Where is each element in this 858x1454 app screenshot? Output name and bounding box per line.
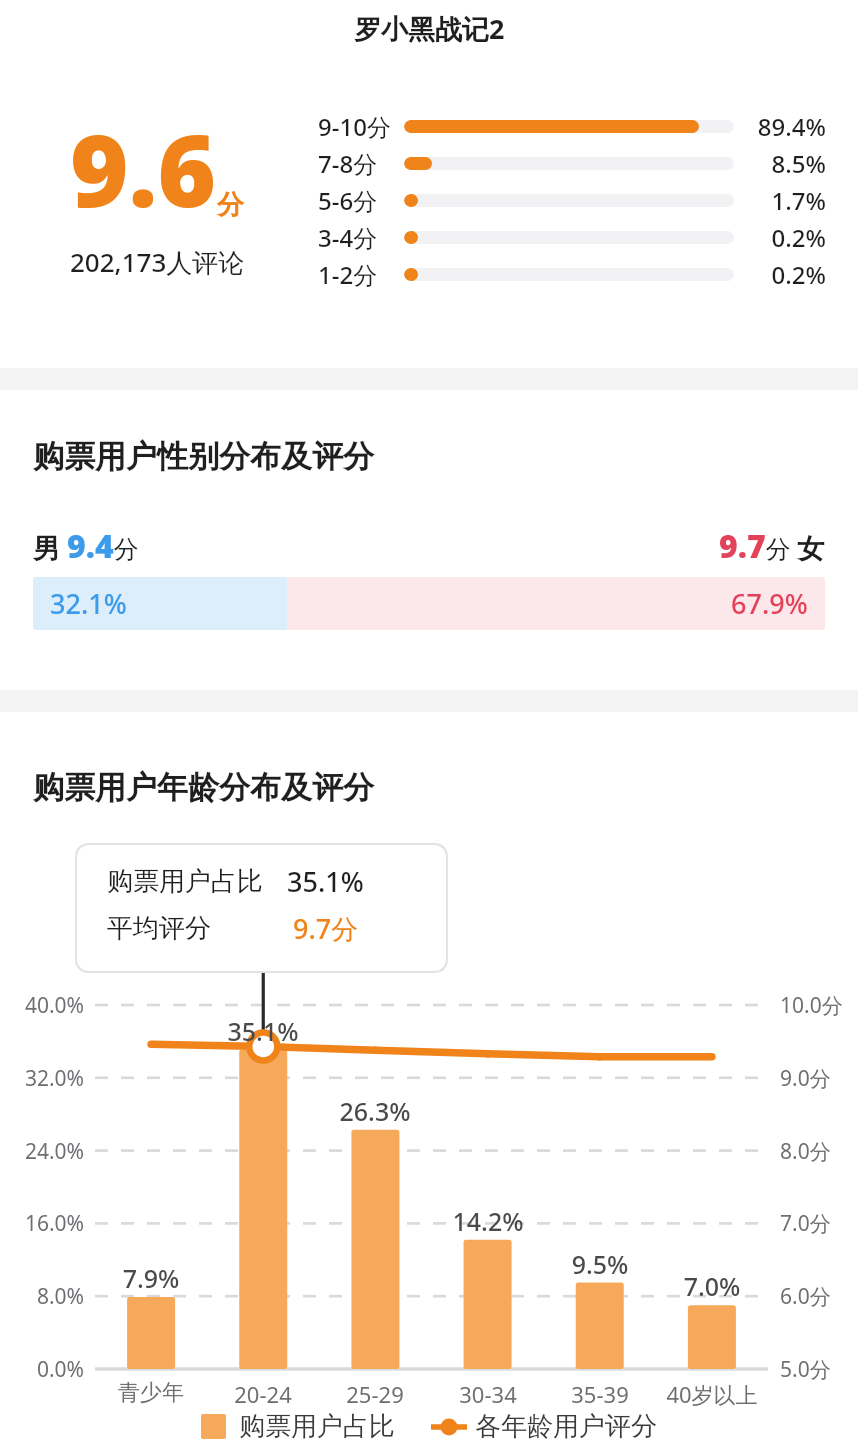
staticText: 30-34 bbox=[432, 1379, 544, 1409]
staticText: 67.9% bbox=[731, 585, 808, 622]
staticText: 9.0分 bbox=[780, 1064, 831, 1093]
button[interactable]: 7-8分 bbox=[318, 146, 826, 180]
staticText: 32.0% bbox=[2, 1064, 84, 1093]
staticText: 32.1% bbox=[50, 585, 127, 622]
staticText: 青少年 bbox=[95, 1379, 207, 1407]
staticText: 5.0分 bbox=[780, 1355, 831, 1384]
staticText: 7.0分 bbox=[780, 1209, 831, 1238]
staticText: 9.7分 bbox=[293, 910, 359, 947]
staticText: 24.0% bbox=[2, 1137, 84, 1166]
staticText: 25-29 bbox=[319, 1379, 431, 1409]
staticText: 0.2% bbox=[734, 258, 826, 291]
staticText: 16.0% bbox=[2, 1209, 84, 1238]
button[interactable]: 1-2分 bbox=[318, 257, 826, 291]
staticText: 男 9.4分 bbox=[33, 524, 139, 568]
staticText: 罗小黑战记2 bbox=[354, 10, 505, 47]
staticText: 7-8分 bbox=[318, 147, 404, 180]
staticText: 9.7分 女 bbox=[719, 524, 825, 568]
staticText: 0.0% bbox=[2, 1355, 84, 1384]
staticText: 1-2分 bbox=[318, 258, 404, 291]
staticText: 0.2% bbox=[734, 221, 826, 254]
staticText: 26.3% bbox=[319, 1094, 431, 1128]
staticText: 40.0% bbox=[2, 991, 84, 1020]
button[interactable]: 32.1% bbox=[33, 577, 825, 630]
staticText: 6.0分 bbox=[780, 1282, 831, 1311]
staticText: 35.1% bbox=[287, 863, 364, 900]
staticText: 14.2% bbox=[432, 1204, 544, 1238]
staticText: 3-4分 bbox=[318, 221, 404, 254]
staticText: 20-24 bbox=[207, 1379, 319, 1409]
staticText: 购票用户性别分布及评分 bbox=[33, 437, 374, 476]
staticText: 7.0% bbox=[656, 1269, 768, 1303]
staticText: 1.7% bbox=[734, 184, 826, 217]
staticText: 40岁以上 bbox=[656, 1379, 768, 1409]
button[interactable]: 购票用户占比 bbox=[77, 845, 446, 971]
staticText: 202,173人评论 bbox=[70, 244, 245, 280]
staticText: 10.0分 bbox=[780, 991, 843, 1020]
button[interactable]: 5-6分 bbox=[318, 183, 826, 217]
staticText: 平均评分 bbox=[107, 912, 211, 945]
staticText: 购票用户占比 bbox=[107, 865, 263, 898]
staticText: 9.5% bbox=[544, 1247, 656, 1281]
staticText: 购票用户占比 bbox=[239, 1410, 395, 1443]
button[interactable]: 3-4分 bbox=[318, 220, 826, 254]
button[interactable]: 9-10分 bbox=[318, 109, 826, 143]
staticText: 7.9% bbox=[95, 1261, 207, 1295]
staticText: 5-6分 bbox=[318, 184, 404, 217]
staticText: 8.0分 bbox=[780, 1137, 831, 1166]
staticText: 35-39 bbox=[544, 1379, 656, 1409]
staticText: 购票用户年龄分布及评分 bbox=[33, 768, 374, 807]
staticText: 9-10分 bbox=[318, 110, 404, 143]
staticText: 分 bbox=[217, 188, 244, 222]
staticText: 35.1% bbox=[207, 1014, 319, 1048]
staticText: 9.6 bbox=[70, 100, 217, 236]
staticText: 各年龄用户评分 bbox=[475, 1410, 657, 1443]
staticText: 8.0% bbox=[2, 1282, 84, 1311]
staticText: 89.4% bbox=[734, 110, 826, 143]
staticText: 8.5% bbox=[734, 147, 826, 180]
